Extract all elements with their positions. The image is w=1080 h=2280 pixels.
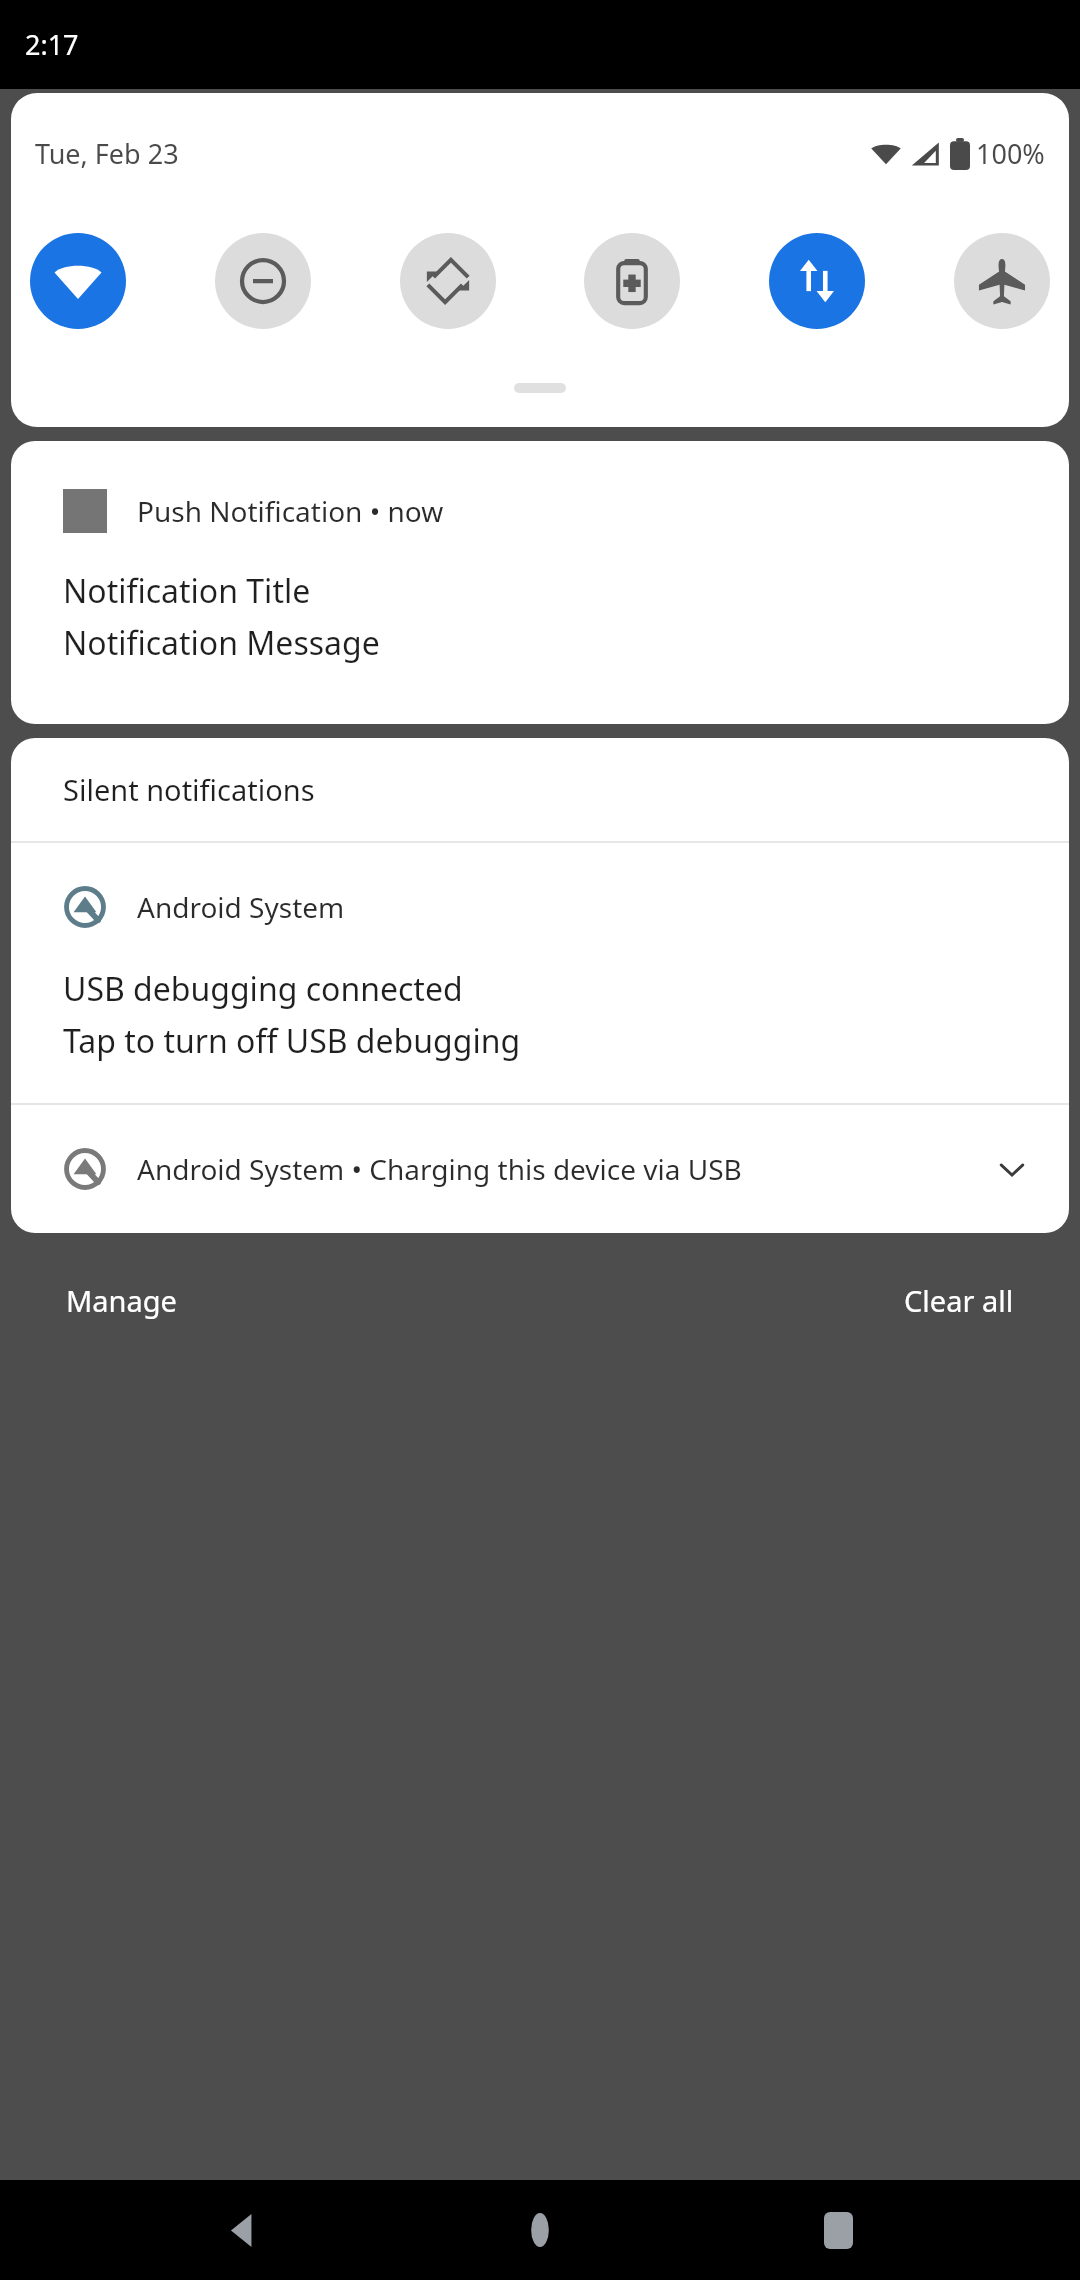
button[interactable]: Clear all bbox=[878, 1265, 1040, 1336]
button[interactable]: Home bbox=[485, 2180, 595, 2280]
staticText: Android System • Charging this device vi… bbox=[137, 1150, 742, 1188]
button[interactable]: Auto rotate bbox=[400, 233, 496, 329]
staticText: Clear all bbox=[904, 1281, 1014, 1320]
staticText: Android System bbox=[137, 888, 345, 926]
button[interactable]: Push Notification • now bbox=[11, 441, 1069, 724]
button[interactable]: Recents bbox=[783, 2180, 893, 2280]
staticText: Tap to turn off USB debugging bbox=[63, 1019, 521, 1063]
button[interactable]: Android System bbox=[11, 843, 1069, 1103]
staticText: 2:17 bbox=[25, 26, 79, 63]
button[interactable]: Airplane mode bbox=[954, 233, 1050, 329]
button[interactable]: Android System • Charging this device vi… bbox=[11, 1105, 1069, 1233]
button[interactable]: Mobile data bbox=[769, 233, 865, 329]
button[interactable]: Silent notifications bbox=[11, 738, 1069, 841]
staticText: Manage bbox=[66, 1281, 177, 1320]
staticText: Notification Title bbox=[63, 569, 311, 613]
button[interactable]: Do not disturb bbox=[215, 233, 311, 329]
button[interactable]: Back bbox=[188, 2180, 298, 2280]
staticText: 100% bbox=[976, 135, 1045, 172]
button[interactable]: Wi-Fi bbox=[30, 233, 126, 329]
staticText: Tue, Feb 23 bbox=[35, 135, 179, 172]
staticText: Silent notifications bbox=[63, 770, 315, 809]
button[interactable]: Manage bbox=[40, 1265, 203, 1336]
staticText: Notification Message bbox=[63, 621, 380, 665]
button[interactable]: Battery Saver bbox=[584, 233, 680, 329]
staticText: Push Notification • now bbox=[137, 492, 444, 530]
staticText: USB debugging connected bbox=[63, 967, 463, 1011]
